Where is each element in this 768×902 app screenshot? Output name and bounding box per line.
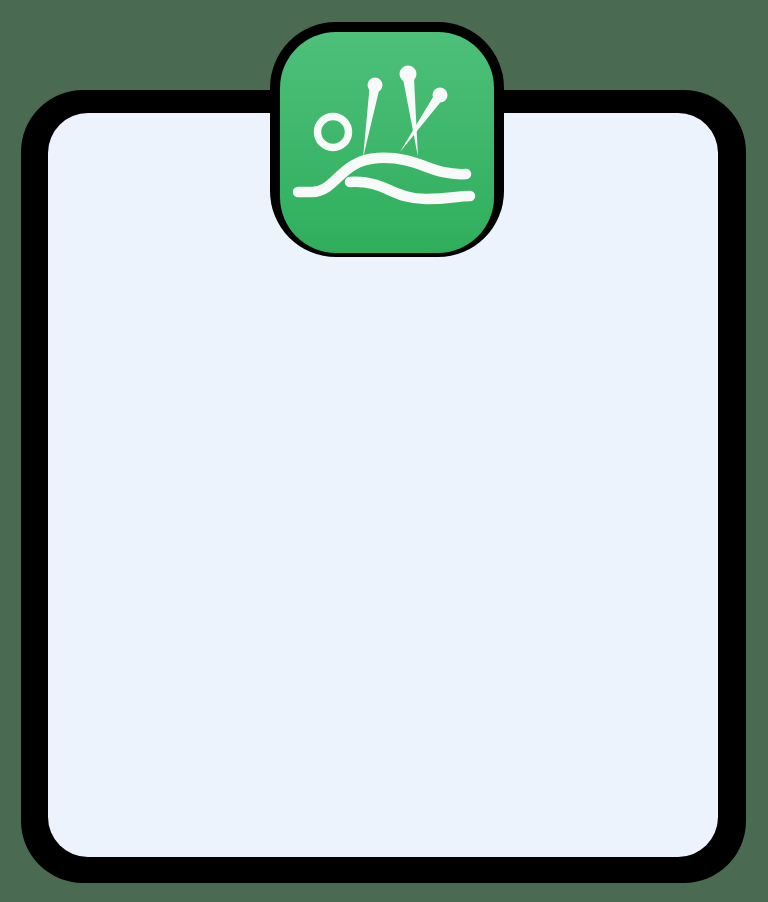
button[interactable]: Acupuncture clipboard sheet: [0, 0, 768, 902]
